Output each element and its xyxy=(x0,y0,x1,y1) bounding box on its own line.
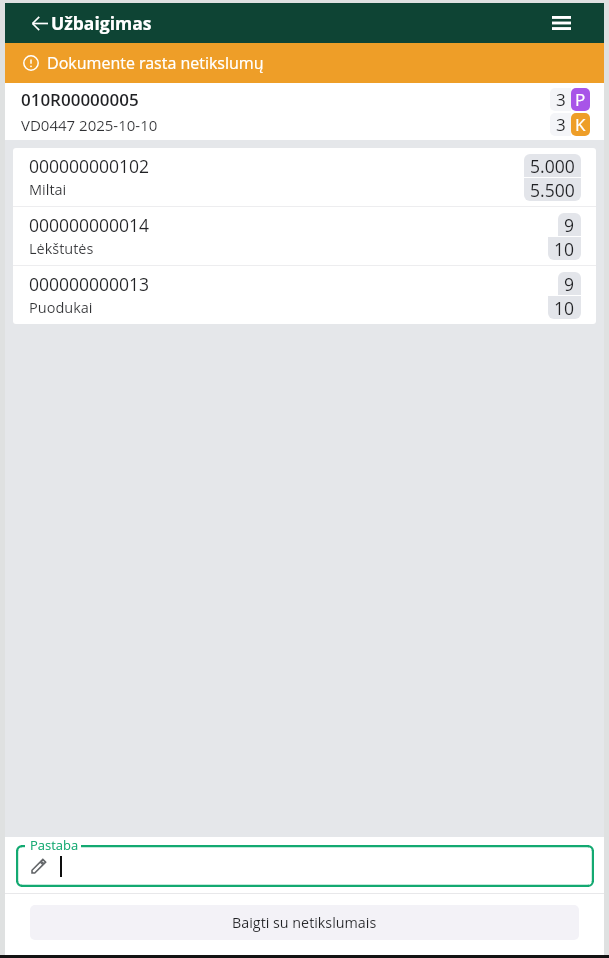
staticText: Lėkštutės xyxy=(29,239,94,259)
button[interactable]: 000000000102 xyxy=(13,148,596,206)
staticText: Miltai xyxy=(29,180,67,200)
staticText: 3 xyxy=(556,88,566,111)
other: Edit note xyxy=(29,856,49,876)
button[interactable]: Užbaigimas xyxy=(5,5,162,41)
staticText: Užbaigimas xyxy=(51,11,152,35)
button[interactable]: Baigti su netikslumais xyxy=(30,905,579,940)
staticText: 000000000013 xyxy=(29,272,150,296)
button[interactable]: 000000000013 xyxy=(13,266,596,324)
staticText: Dokumente rasta netikslumų xyxy=(47,52,264,74)
staticText: 9 xyxy=(564,272,575,295)
button[interactable]: Dokumente rasta netikslumų xyxy=(5,43,604,83)
staticText: 3 xyxy=(556,113,566,136)
staticText: 5.000 xyxy=(530,154,575,177)
staticText: 010R00000005 xyxy=(21,88,139,111)
staticText: 9 xyxy=(564,213,575,236)
staticText: 000000000102 xyxy=(29,154,150,178)
staticText: Baigti su netikslumais xyxy=(232,913,377,932)
staticText: 10 xyxy=(554,296,575,319)
staticText: 000000000014 xyxy=(29,213,150,237)
staticText: Puodukai xyxy=(29,298,93,318)
staticText: P xyxy=(575,88,586,111)
button[interactable]: 010R00000005 xyxy=(5,83,604,140)
staticText: K xyxy=(575,113,586,136)
staticText: VD0447 2025-10-10 xyxy=(21,115,158,135)
staticText: Pastaba xyxy=(30,836,79,854)
staticText: 10 xyxy=(554,237,575,260)
staticText: 5.500 xyxy=(530,178,575,201)
button[interactable]: 000000000014 xyxy=(13,207,596,265)
button[interactable]: Pastaba xyxy=(16,845,594,887)
button[interactable]: Menu xyxy=(518,3,604,43)
